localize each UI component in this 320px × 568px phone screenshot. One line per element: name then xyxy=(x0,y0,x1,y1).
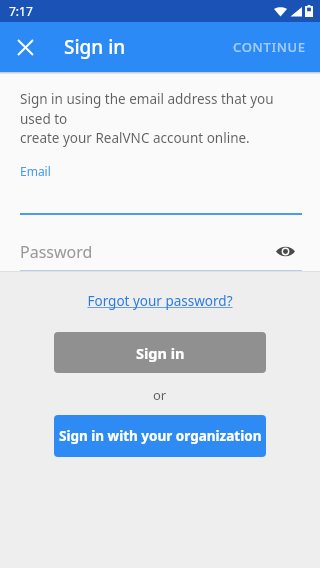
staticText: Sign in with your organization xyxy=(59,427,262,445)
staticText: 7:17 xyxy=(9,3,33,19)
button[interactable]: Show password xyxy=(272,238,298,264)
button[interactable]: Sign in with your organization xyxy=(54,415,266,457)
button[interactable]: Sign in xyxy=(54,332,266,373)
staticText: Sign in xyxy=(136,343,185,363)
staticText: Password xyxy=(20,241,93,263)
button[interactable]: Password xyxy=(0,240,320,271)
button[interactable]: Close xyxy=(7,29,43,65)
staticText: CONTINUE xyxy=(233,38,306,56)
staticText: or xyxy=(153,386,167,404)
button[interactable]: CONTINUE xyxy=(219,26,320,68)
button[interactable]: Forgot your password? xyxy=(81,290,239,312)
staticText: Sign in xyxy=(64,34,126,60)
staticText: Sign in using the email address that you… xyxy=(20,90,304,147)
staticText: Email xyxy=(20,163,51,179)
staticText: Forgot your password? xyxy=(87,292,233,310)
button[interactable]: Email xyxy=(0,163,320,215)
